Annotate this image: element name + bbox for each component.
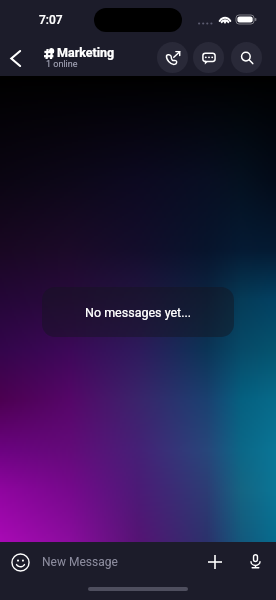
button[interactable]: Emoji (6, 548, 34, 576)
button[interactable]: Call (157, 42, 188, 73)
button[interactable]: Comments (193, 42, 224, 73)
staticText: New Message (42, 555, 118, 569)
button[interactable]: Search (231, 42, 262, 73)
button[interactable]: Voice message (241, 547, 270, 576)
button[interactable]: No messages yet... (42, 287, 234, 337)
staticText: No messages yet... (85, 305, 192, 320)
button[interactable]: Attach (200, 547, 229, 576)
staticText: Marketing (57, 45, 115, 60)
staticText: 7:07 (39, 13, 63, 27)
staticText: 1 online (46, 59, 78, 70)
button[interactable]: Back (0, 42, 30, 74)
